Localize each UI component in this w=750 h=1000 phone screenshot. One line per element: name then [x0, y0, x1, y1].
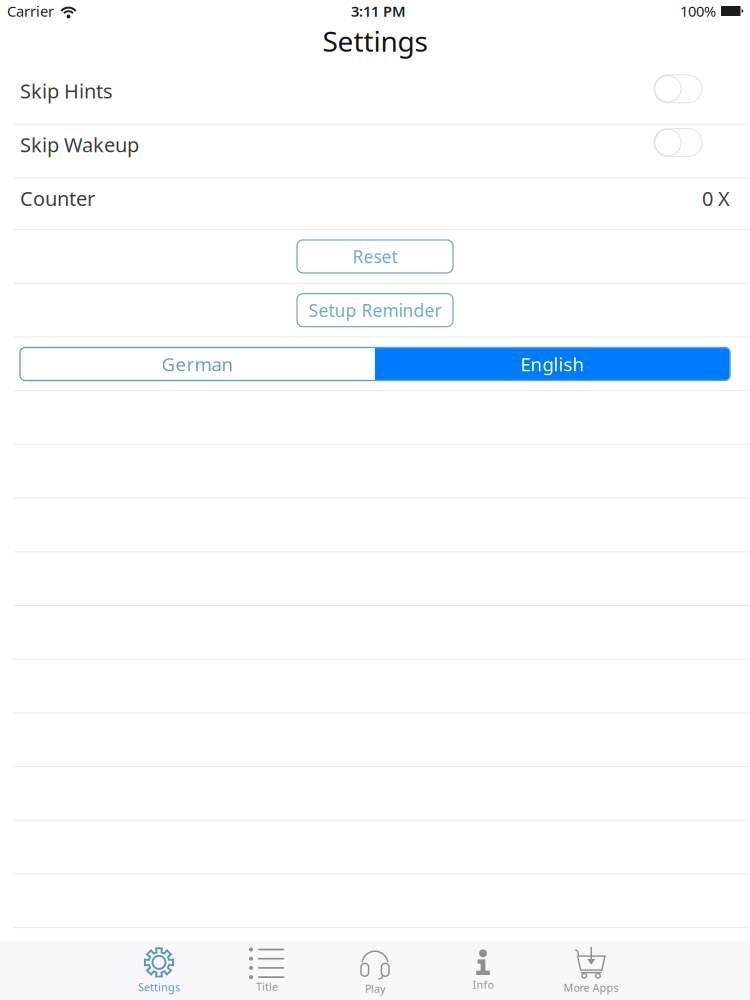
button[interactable]: English	[375, 347, 730, 380]
staticText: More Apps	[563, 980, 618, 995]
button[interactable]: Play	[321, 941, 429, 1000]
button[interactable]: German	[20, 347, 375, 380]
button[interactable]: Skip Wakeup	[654, 129, 702, 157]
button[interactable]: Info	[429, 941, 537, 1000]
button[interactable]: More Apps	[537, 941, 645, 1000]
staticText: German	[161, 352, 233, 376]
staticText: Play	[365, 981, 385, 996]
staticText: Settings	[322, 22, 427, 60]
staticText: Skip Hints	[20, 78, 113, 104]
staticText: Counter	[20, 185, 95, 212]
staticText: 3:11 PM	[351, 1, 406, 21]
button[interactable]: Setup Reminder	[297, 294, 453, 327]
staticText: Carrier	[7, 1, 54, 21]
button[interactable]: Title	[213, 941, 321, 1000]
staticText: Setup Reminder	[308, 299, 441, 322]
staticText: 100%	[680, 1, 716, 21]
staticText: Settings	[138, 980, 180, 994]
staticText: Info	[472, 977, 493, 992]
button[interactable]: Skip Hints	[654, 75, 702, 103]
staticText: Title	[256, 979, 278, 994]
staticText: Skip Wakeup	[20, 131, 139, 158]
staticText: Reset	[352, 245, 397, 268]
button[interactable]: Settings	[105, 941, 213, 1000]
button[interactable]: Reset	[297, 240, 453, 273]
staticText: 0 X	[702, 185, 730, 212]
staticText: English	[520, 352, 584, 376]
